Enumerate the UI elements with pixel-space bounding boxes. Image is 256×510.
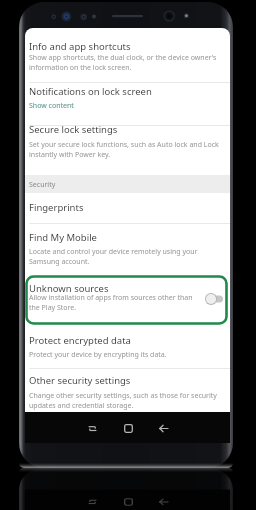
staticText: Security [29,180,56,190]
button[interactable]: Home [116,492,140,510]
staticText: Show content [29,101,222,111]
button[interactable] [25,28,230,82]
staticText: Secure lock settings [29,123,118,136]
staticText: Show app shortcuts, the dual clock, or t… [29,53,222,73]
button[interactable]: Back [151,416,175,440]
button[interactable]: Recent apps [80,492,104,510]
button[interactable] [25,368,230,412]
button[interactable]: Home [116,416,140,440]
button[interactable] [25,223,230,274]
button[interactable]: Back [151,492,175,510]
staticText: Change other security settings, such as … [29,391,222,411]
button[interactable] [25,193,230,223]
staticText: Set your secure lock functions, such as … [29,140,222,160]
staticText: Find My Mobile [29,231,97,244]
staticText: Protect your device by encrypting its da… [29,350,222,360]
staticText: Locate and control your device remotely … [29,247,222,267]
staticText: Other security settings [29,374,131,387]
staticText: Unknown sources [29,282,109,295]
staticText: Fingerprints [29,201,84,214]
staticText: Protect encrypted data [29,334,131,347]
button[interactable] [25,82,230,125]
staticText: Allow installation of apps from sources … [29,293,195,313]
button[interactable] [25,325,230,368]
staticText: Info and app shortcuts [29,40,131,53]
button[interactable]: Recent apps [80,416,104,440]
button[interactable] [25,125,230,175]
button[interactable] [25,275,228,325]
staticText: Notifications on lock screen [29,85,152,98]
